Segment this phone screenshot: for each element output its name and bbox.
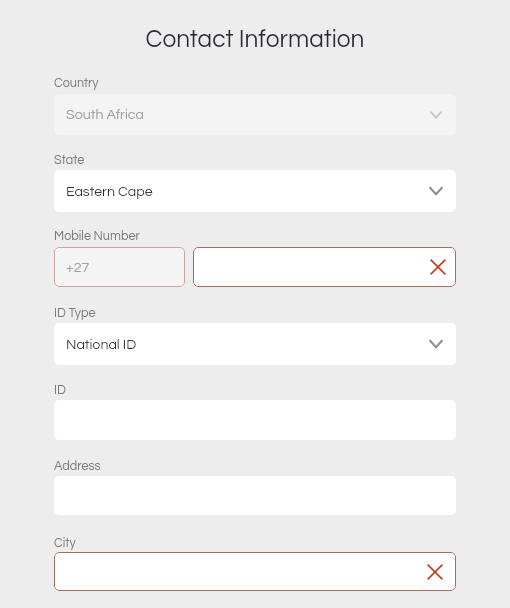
button[interactable]: Clear city: [54, 552, 456, 591]
staticText: +27: [66, 260, 90, 275]
button[interactable]: +27: [54, 247, 185, 287]
staticText: National ID: [66, 337, 426, 352]
button[interactable]: Eastern Cape: [54, 170, 456, 212]
button[interactable]: South Africa: [54, 94, 456, 135]
staticText: Contact Information: [0, 27, 510, 52]
other: Clear city: [426, 563, 444, 581]
staticText: State: [54, 154, 85, 167]
button[interactable]: Clear mobile number: [193, 247, 456, 287]
other: Clear mobile number: [429, 258, 447, 276]
button[interactable]: National ID: [54, 323, 456, 365]
staticText: City: [54, 537, 76, 550]
staticText: Mobile Number: [54, 230, 140, 243]
staticText: ID: [54, 384, 66, 397]
staticText: ID Type: [54, 307, 96, 320]
staticText: Country: [54, 77, 99, 90]
staticText: South Africa: [66, 107, 426, 122]
staticText: Address: [54, 460, 101, 473]
staticText: Eastern Cape: [66, 184, 426, 199]
